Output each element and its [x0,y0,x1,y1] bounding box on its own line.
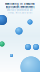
staticText: application environment [5,5,34,8]
staticText: times, with zero effort [7,11,32,14]
staticText: Monitoring in a secured [5,2,35,5]
staticText: and fully protected at all [7,9,33,11]
staticText: Keep your services observable [5,6,34,9]
